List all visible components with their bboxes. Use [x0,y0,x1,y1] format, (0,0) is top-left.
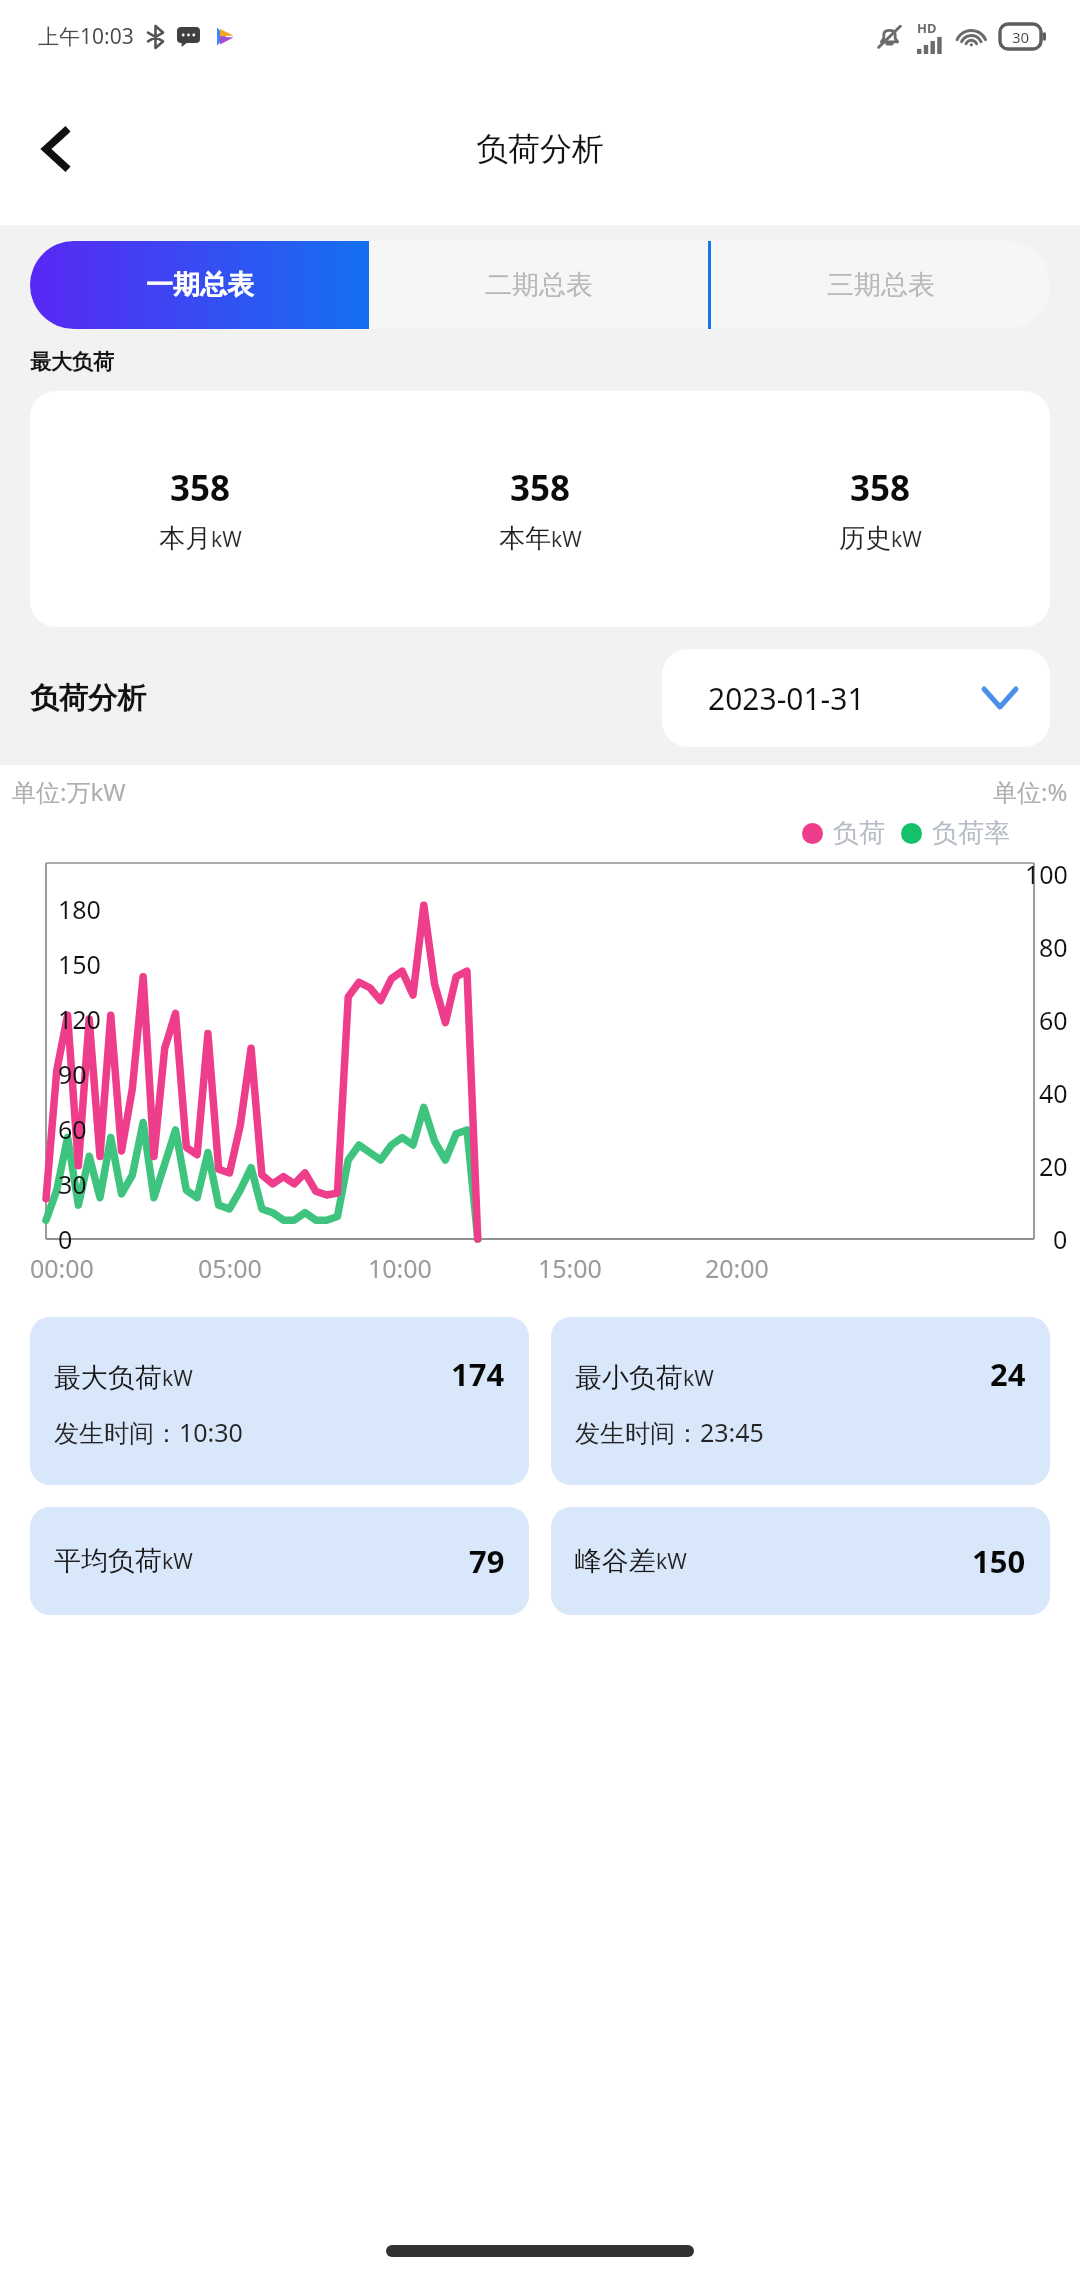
staticText: 单位:万kW [12,775,126,808]
staticText: 一期总表 [146,268,254,302]
staticText: 358 [510,464,571,512]
staticText: 峰谷差 [575,1544,656,1578]
staticText: 90 [58,1057,87,1091]
staticText: HD [917,19,937,37]
staticText: 150 [972,1540,1026,1582]
staticText: 30 [58,1167,87,1201]
staticText: 发生时间：10:30 [54,1415,243,1449]
button[interactable]: 2023-01-31 [662,649,1050,747]
staticText: 20 [1039,1149,1068,1183]
button[interactable]: 峰谷差 [551,1507,1050,1615]
staticText: 上午10:03 [38,22,134,51]
staticText: kW [162,1364,193,1393]
button[interactable]: Back [18,111,94,187]
button[interactable]: 最小负荷 [551,1317,1050,1485]
staticText: 358 [850,464,911,512]
button[interactable]: 二期总表 [369,241,708,329]
staticText: 最小负荷 [575,1361,683,1395]
staticText: 174 [451,1353,505,1395]
staticText: 二期总表 [485,268,593,302]
staticText: 0 [58,1222,73,1256]
staticText: 2023-01-31 [708,678,865,719]
staticText: 120 [58,1002,101,1036]
staticText: 150 [58,947,101,981]
staticText: 79 [469,1540,505,1582]
staticText: 60 [1039,1003,1068,1037]
staticText: 负荷分析 [476,129,604,169]
button[interactable]: 平均负荷 [30,1507,529,1615]
staticText: 本年 [499,522,551,555]
staticText: 40 [1039,1076,1068,1110]
button[interactable]: 三期总表 [711,241,1050,329]
staticText: 15:00 [538,1251,602,1285]
staticText: 最大负荷 [54,1361,162,1395]
staticText: 60 [58,1112,87,1146]
staticText: 100 [1025,857,1068,891]
staticText: 180 [58,892,101,926]
staticText: 本月 [159,522,211,555]
staticText: 负荷率 [932,817,1010,850]
staticText: kW [656,1547,687,1576]
staticText: 最大负荷 [30,349,114,375]
staticText: kW [891,525,922,554]
staticText: 10:00 [368,1251,432,1285]
staticText: 发生时间：23:45 [575,1415,764,1449]
staticText: kW [683,1364,714,1393]
button[interactable]: 最大负荷 [30,1317,529,1485]
staticText: 三期总表 [827,268,935,302]
staticText: 30 [1012,27,1030,47]
staticText: 05:00 [198,1251,262,1285]
staticText: kW [162,1547,193,1576]
staticText: 358 [170,464,231,512]
staticText: kW [551,525,582,554]
button[interactable]: 一期总表 [30,241,369,329]
staticText: 00:00 [30,1251,94,1285]
staticText: 负荷分析 [30,680,146,717]
staticText: 历史 [839,522,891,555]
staticText: 20:00 [705,1251,769,1285]
staticText: 负荷 [833,817,885,850]
staticText: 0 [1053,1222,1068,1256]
staticText: kW [211,525,242,554]
staticText: 80 [1039,930,1068,964]
staticText: 单位:% [993,775,1068,808]
staticText: 平均负荷 [54,1544,162,1578]
staticText: 24 [990,1353,1026,1395]
